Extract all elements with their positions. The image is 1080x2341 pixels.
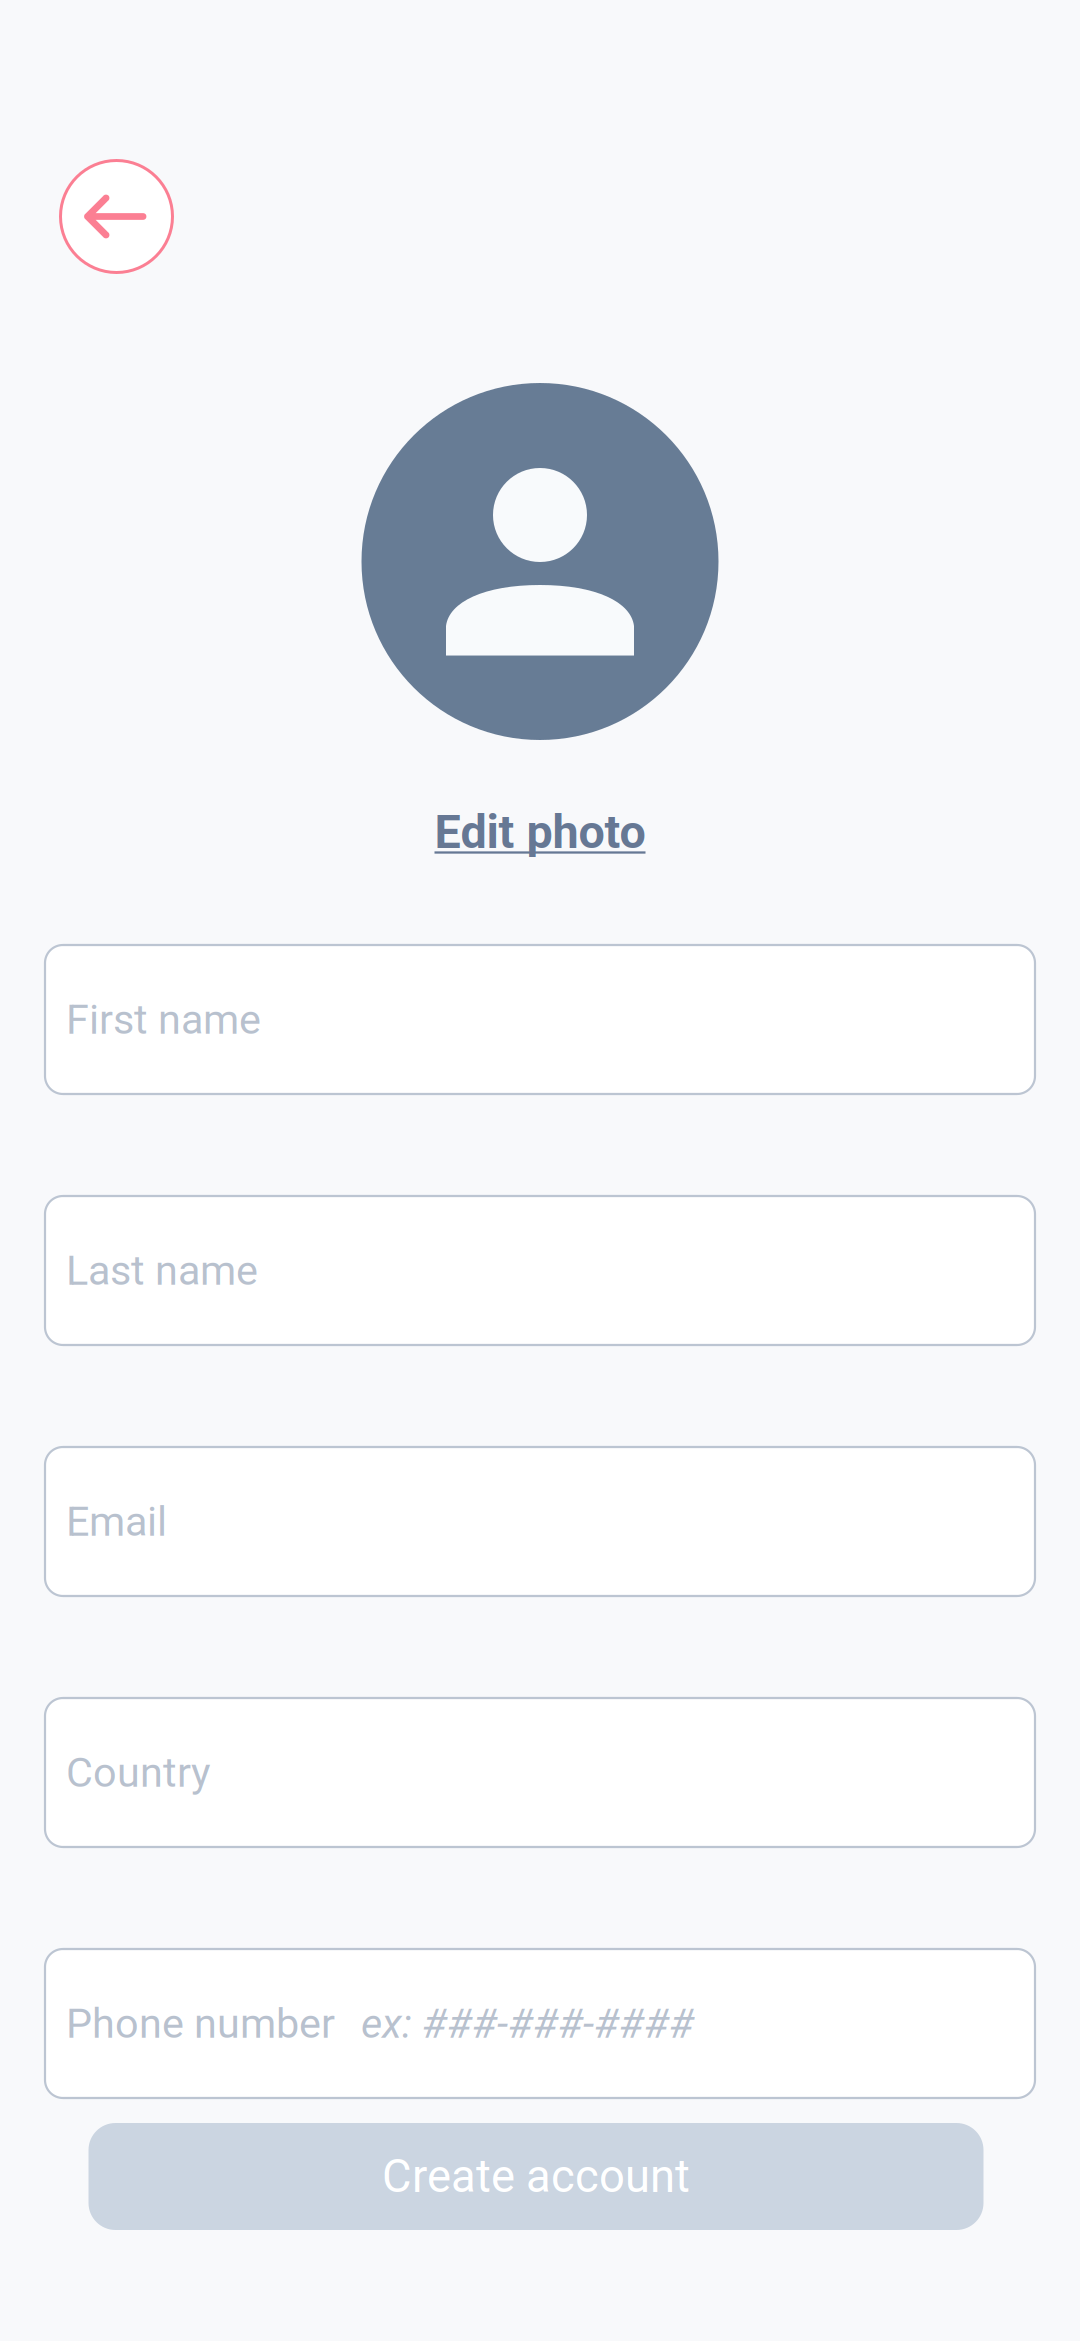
- button[interactable]: First name: [45, 945, 1035, 1094]
- staticText: Email: [66, 1497, 167, 1546]
- staticText: ex: ###-###-####: [361, 1999, 694, 2048]
- staticText: Create account: [382, 2150, 690, 2203]
- button[interactable]: Phone number: [45, 1949, 1035, 2098]
- staticText: Last name: [66, 1246, 258, 1295]
- staticText: Edit photo: [434, 805, 645, 859]
- staticText: Phone number: [66, 1999, 335, 2048]
- button[interactable]: Edit photo: [428, 799, 651, 865]
- staticText: Country: [66, 1748, 211, 1797]
- button[interactable]: Create account: [88, 2123, 983, 2230]
- button[interactable]: Last name: [45, 1196, 1035, 1345]
- button[interactable]: Back: [60, 160, 173, 273]
- button[interactable]: Country: [45, 1698, 1035, 1847]
- staticText: First name: [66, 995, 261, 1044]
- button[interactable]: Email: [45, 1447, 1035, 1596]
